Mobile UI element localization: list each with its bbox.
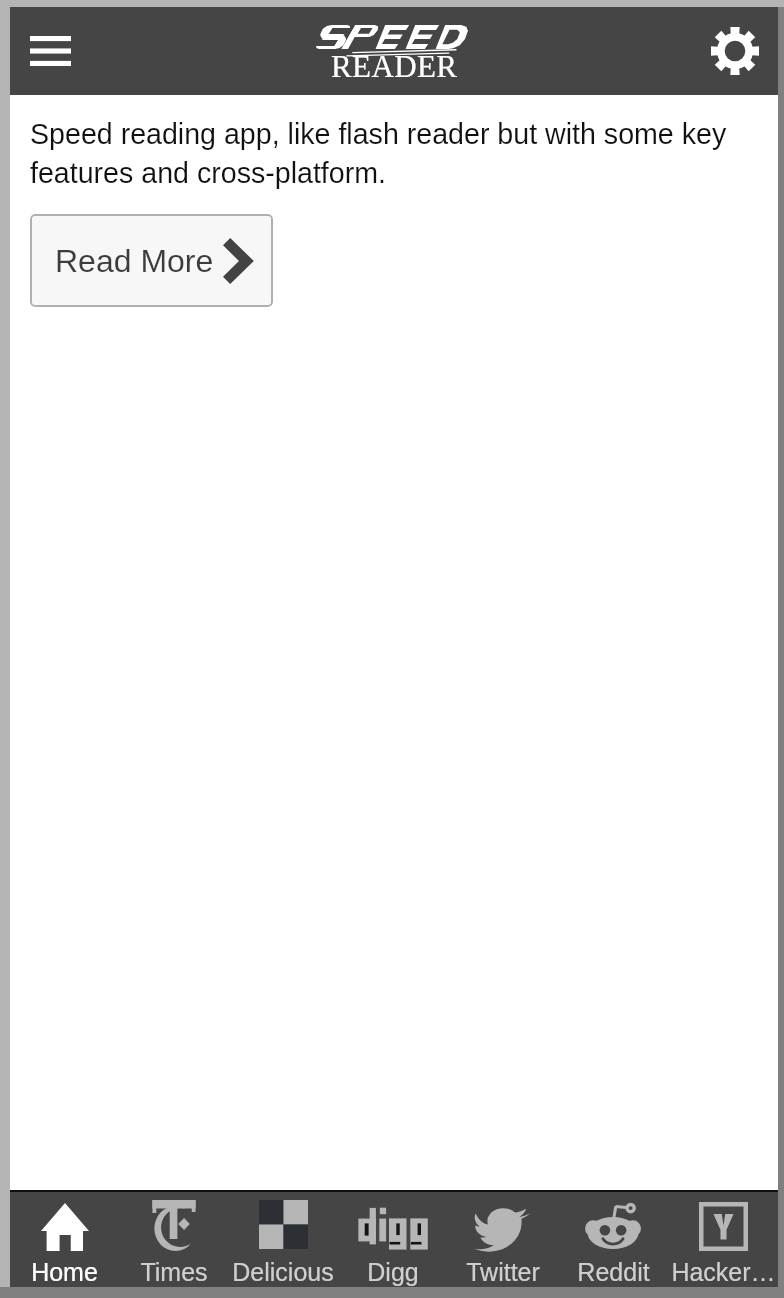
button[interactable]: Times [119,1192,228,1287]
button[interactable]: Delicious [228,1192,338,1287]
button[interactable]: Reddit [558,1192,668,1287]
button[interactable]: Hacker… [668,1192,778,1287]
staticText: Hacker… [671,1258,776,1286]
staticText: Reddit [577,1258,650,1286]
staticText: Delicious [232,1258,334,1286]
staticText: Speed reading app, like flash reader but… [30,118,758,189]
button[interactable]: Home [10,1192,119,1287]
button[interactable]: Menu [18,15,82,87]
button[interactable]: Digg [338,1192,448,1287]
staticText: Twitter [466,1258,540,1286]
staticText: Home [31,1258,98,1286]
staticText: Digg [367,1258,419,1286]
button[interactable]: Twitter [448,1192,558,1287]
button[interactable]: Settings [701,17,769,85]
button[interactable]: Read More [30,214,273,307]
staticText: Times [140,1258,208,1286]
staticText: Read More [55,243,214,279]
staticText: READER [331,49,458,83]
